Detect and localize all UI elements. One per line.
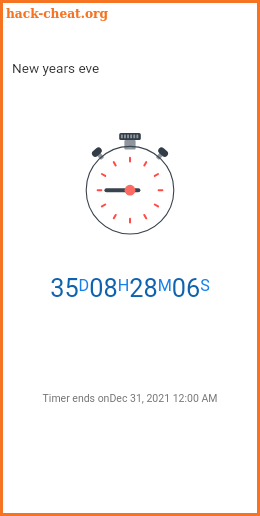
staticText: Timer ends onDec 31, 2021 12:00 AM bbox=[0, 392, 260, 404]
button[interactable]: Stopwatch timer bbox=[76, 135, 184, 241]
staticText: 35D08H28M06S bbox=[0, 274, 260, 304]
staticText: hack-cheat.org bbox=[6, 7, 109, 21]
staticText: New years eve bbox=[12, 60, 100, 76]
